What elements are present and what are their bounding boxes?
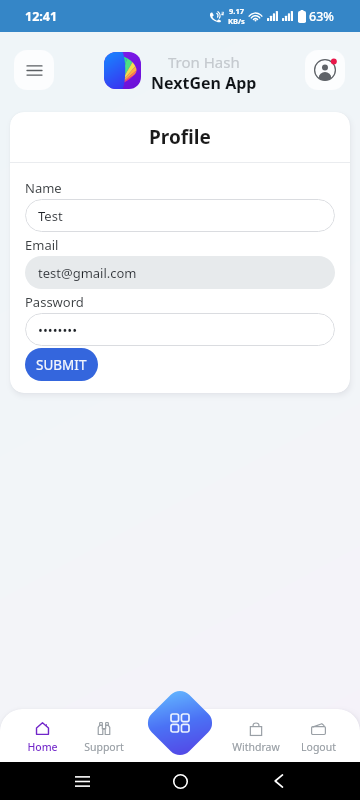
button[interactable]: test@gmail.com	[25, 256, 335, 289]
staticText: NextGen App	[151, 72, 257, 94]
staticText: SUBMIT	[36, 356, 87, 374]
button[interactable]: ••••••••	[25, 313, 335, 346]
button[interactable]: Test	[25, 199, 335, 232]
staticText: KB/s	[228, 16, 245, 26]
staticText: Password	[25, 293, 84, 311]
staticText: Email	[25, 236, 59, 254]
staticText: Home	[27, 740, 58, 754]
button[interactable]: Logout	[287, 721, 349, 765]
button[interactable]: Account	[305, 50, 345, 90]
staticText: ••••••••	[38, 321, 78, 339]
staticText: Name	[25, 179, 62, 197]
staticText: 9.17	[229, 6, 244, 16]
button[interactable]: SUBMIT	[25, 348, 98, 381]
button[interactable]: Menu	[14, 50, 54, 90]
staticText: Test	[38, 207, 63, 225]
staticText: Tron Hash	[168, 52, 240, 72]
staticText: Profile	[149, 124, 211, 150]
staticText: 12:41	[25, 8, 58, 25]
button[interactable]: Recents	[65, 764, 99, 798]
staticText: Withdraw	[232, 740, 280, 754]
button[interactable]: Home	[11, 721, 73, 765]
staticText: Support	[84, 740, 124, 754]
button[interactable]: Apps	[146, 689, 214, 757]
button[interactable]: Support	[73, 721, 135, 765]
staticText: Logout	[301, 740, 336, 754]
button[interactable]: Withdraw	[225, 721, 287, 765]
button[interactable]: Back	[262, 764, 296, 798]
staticText: 63%	[309, 8, 334, 25]
button[interactable]: Home	[163, 764, 197, 798]
staticText: test@gmail.com	[38, 264, 137, 282]
